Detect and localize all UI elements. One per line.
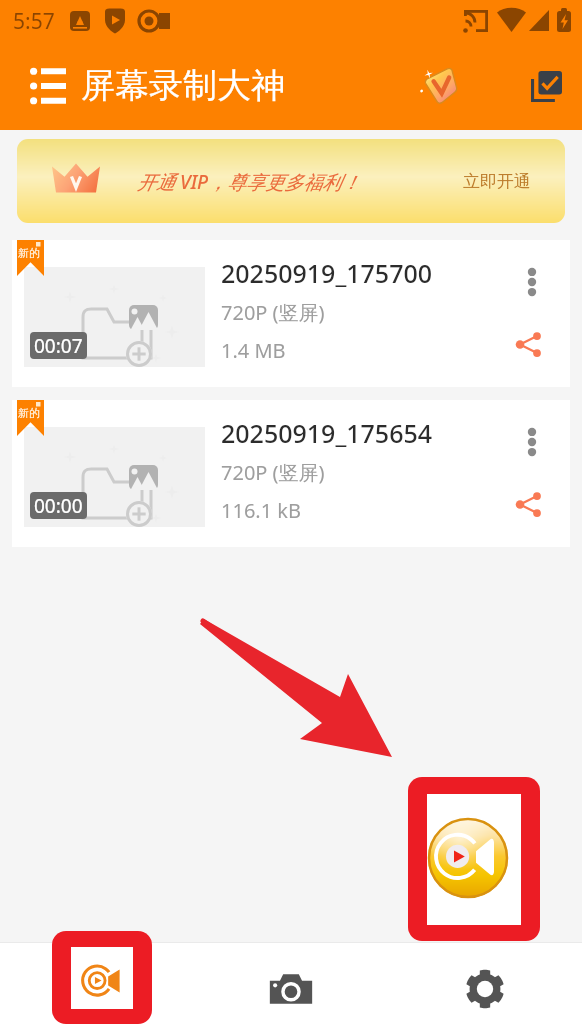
staticText: 116.1 kB	[221, 497, 301, 524]
staticText: 00:07	[34, 333, 83, 359]
button[interactable]: 00:07	[12, 240, 570, 387]
button[interactable]: Screenshot	[194, 942, 388, 1035]
staticText: 新的	[18, 406, 40, 420]
button[interactable]: Settings	[388, 942, 582, 1035]
staticText: 00:00	[34, 493, 83, 519]
button[interactable]: More options	[505, 255, 559, 309]
button[interactable]: Start recording	[408, 777, 540, 941]
staticText: 5:57	[13, 7, 55, 36]
staticText: 720P (竖屏)	[221, 299, 325, 326]
button[interactable]: 00:00	[12, 400, 570, 547]
button[interactable]: More options	[505, 415, 559, 469]
button[interactable]: 开通 VIP，尊享更多福利！	[17, 139, 565, 223]
staticText: 新的	[18, 246, 40, 260]
button[interactable]: Share	[500, 476, 556, 532]
button[interactable]: VIP	[413, 58, 469, 114]
button[interactable]: Menu	[18, 56, 78, 116]
staticText: 20250919_175700	[221, 256, 433, 290]
staticText: 1.4 MB	[221, 337, 286, 364]
staticText: 立即开通	[463, 171, 531, 192]
staticText: 开通 VIP，尊享更多福利！	[137, 169, 361, 195]
staticText: 屏幕录制大神	[81, 64, 285, 107]
button[interactable]: Select all	[518, 58, 574, 114]
staticText: 720P (竖屏)	[221, 459, 325, 486]
button[interactable]: Share	[500, 316, 556, 372]
button[interactable]: Record	[0, 942, 194, 1035]
staticText: 20250919_175654	[221, 416, 433, 450]
button[interactable]: 立即开通	[457, 163, 537, 200]
